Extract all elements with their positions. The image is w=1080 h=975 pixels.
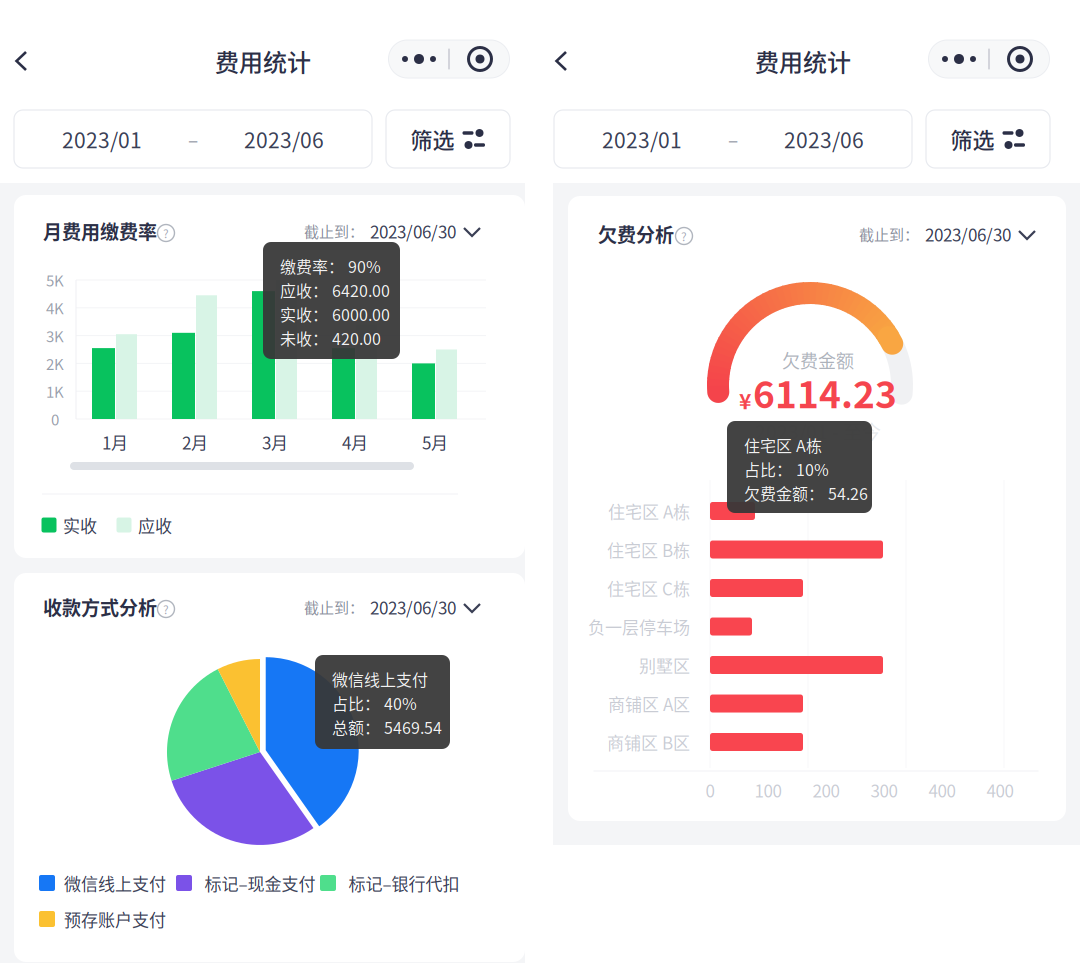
- staticText: 3K: [46, 325, 64, 346]
- staticText: ?: [163, 600, 169, 618]
- staticText: 月费用缴费率: [43, 217, 157, 245]
- staticText: 筛选: [410, 123, 454, 155]
- staticText: 应收： 6420.00: [280, 278, 390, 302]
- staticText: 2023/06: [244, 124, 324, 154]
- staticText: 0: [51, 408, 59, 430]
- staticText: 总额： 5469.54: [332, 715, 442, 739]
- staticText: 缴费率： 90%: [280, 254, 381, 278]
- staticText: 4月: [342, 430, 368, 454]
- staticText: 占比： 10%: [744, 457, 829, 481]
- staticText: 5月: [422, 430, 448, 454]
- staticText: 400: [986, 778, 1013, 802]
- staticText: 标记–银行代扣: [348, 871, 459, 895]
- staticText: 2023/06/30: [370, 219, 456, 243]
- staticText: 费用统计: [755, 44, 851, 78]
- button[interactable]: 2023/01: [554, 110, 912, 168]
- staticText: 2023/06/30: [925, 222, 1011, 246]
- staticText: 占比： 40%: [332, 691, 417, 715]
- button[interactable]: Back: [0, 37, 43, 85]
- staticText: 实收: [63, 513, 97, 537]
- staticText: 4K: [46, 297, 64, 319]
- staticText: 400: [928, 778, 955, 802]
- staticText: 截止到：: [304, 596, 364, 618]
- staticText: 别墅区: [639, 653, 690, 677]
- staticText: ?: [163, 224, 169, 242]
- staticText: 收款方式分析: [43, 593, 157, 621]
- staticText: 2K: [46, 352, 64, 374]
- staticText: 2023/01 - 至今: [755, 417, 881, 445]
- staticText: 微信线上支付: [64, 871, 166, 895]
- staticText: 负一层停车场: [588, 614, 690, 639]
- staticText: 截止到：: [304, 220, 364, 242]
- staticText: 1K: [46, 380, 64, 402]
- staticText: 3月: [262, 430, 288, 454]
- button[interactable]: 筛选: [386, 110, 510, 168]
- staticText: 0: [705, 778, 714, 802]
- staticText: 欠费金额: [782, 347, 854, 373]
- staticText: 住宅区 C栋: [607, 576, 690, 600]
- staticText: ¥: [739, 385, 751, 415]
- staticText: –: [188, 125, 198, 153]
- staticText: 商铺区 A区: [608, 691, 690, 716]
- button[interactable]: Menu and close: [388, 40, 509, 78]
- staticText: 标记–现金支付: [204, 871, 315, 895]
- staticText: 应收: [138, 513, 172, 537]
- staticText: 2023/01: [62, 124, 142, 154]
- staticText: 5K: [46, 269, 64, 291]
- staticText: 预存账户支付: [64, 907, 166, 931]
- staticText: 2023/06/30: [370, 595, 456, 619]
- staticText: 欠费金额： 54.26: [744, 481, 868, 505]
- staticText: 实收： 6000.00: [280, 302, 390, 326]
- staticText: 住宅区 B栋: [607, 537, 690, 562]
- button[interactable]: Menu and close: [928, 40, 1049, 78]
- button[interactable]: 截止到：: [304, 219, 482, 243]
- staticText: ?: [681, 227, 687, 245]
- staticText: 6114.23: [753, 365, 897, 419]
- button[interactable]: 2023/01: [14, 110, 372, 168]
- staticText: 住宅区 A栋: [744, 433, 822, 457]
- staticText: 费用统计: [215, 44, 311, 78]
- staticText: 2023/06: [784, 124, 864, 154]
- staticText: 2月: [182, 430, 208, 454]
- staticText: 欠费分析: [598, 220, 674, 248]
- staticText: 100: [754, 778, 781, 802]
- staticText: 微信线上支付: [332, 667, 428, 691]
- staticText: 1月: [102, 430, 128, 454]
- staticText: 200: [812, 778, 839, 802]
- staticText: –: [728, 125, 738, 153]
- staticText: 未收： 420.00: [280, 326, 381, 350]
- staticText: 截止到：: [859, 223, 919, 245]
- staticText: 住宅区 A栋: [608, 499, 690, 523]
- button[interactable]: 截止到：: [304, 595, 482, 619]
- staticText: 筛选: [950, 123, 994, 155]
- button[interactable]: Back: [539, 37, 583, 85]
- staticText: 300: [870, 778, 897, 802]
- button[interactable]: 筛选: [926, 110, 1050, 168]
- button[interactable]: 截止到：: [859, 222, 1037, 246]
- staticText: 商铺区 B区: [607, 730, 690, 754]
- staticText: 2023/01: [602, 124, 682, 154]
